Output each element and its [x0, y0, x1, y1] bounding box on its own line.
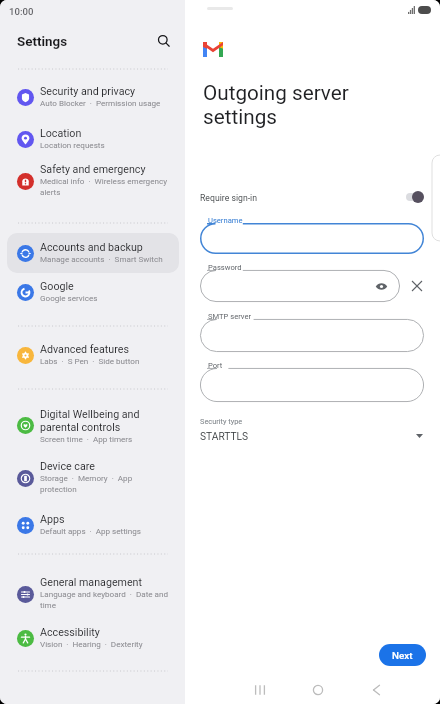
button[interactable]: [7, 506, 179, 546]
button[interactable]: [7, 120, 179, 160]
button[interactable]: Security type: [200, 414, 424, 448]
staticText: Accessibility: [40, 626, 100, 639]
button[interactable]: Next: [379, 644, 426, 666]
staticText: Google services: [40, 293, 98, 302]
staticText: Auto Blocker · Permission usage: [40, 98, 161, 107]
staticText: Apps: [40, 513, 65, 526]
button[interactable]: SMTP server: [200, 319, 424, 352]
staticText: Manage accounts · Smart Switch: [40, 254, 163, 263]
button[interactable]: [7, 78, 179, 118]
button[interactable]: [7, 272, 179, 312]
staticText: Vision · Hearing · Dexterity: [40, 639, 143, 648]
button[interactable]: [7, 233, 179, 273]
staticText: Security type: [200, 417, 243, 426]
staticText: Require sign-in: [200, 193, 258, 203]
staticText: Port: [208, 361, 223, 370]
staticText: Location requests: [40, 140, 105, 149]
button[interactable]: [7, 458, 179, 498]
button[interactable]: Back: [361, 676, 389, 704]
staticText: Advanced features: [40, 343, 129, 356]
button[interactable]: [7, 335, 179, 375]
staticText: Google: [40, 280, 74, 293]
staticText: Medical info · Wireless emergency alerts: [40, 176, 167, 197]
button[interactable]: Clear: [407, 276, 427, 296]
staticText: SMTP server: [208, 312, 252, 321]
staticText: Location: [40, 127, 82, 140]
button[interactable]: Password: [200, 270, 400, 302]
staticText: General management: [40, 576, 143, 589]
staticText: Labs · S Pen · Side button: [40, 356, 140, 365]
staticText: Accounts and backup: [40, 241, 143, 254]
button[interactable]: [7, 574, 179, 614]
staticText: Outgoing server settings: [203, 81, 403, 129]
staticText: Next: [392, 650, 413, 661]
button[interactable]: Search: [151, 28, 175, 52]
button[interactable]: Require sign-in: [195, 186, 429, 209]
staticText: Default apps · App settings: [40, 526, 142, 535]
button[interactable]: Username: [200, 223, 424, 254]
staticText: Device care: [40, 460, 95, 473]
button[interactable]: Recents: [246, 676, 274, 704]
staticText: Screen time · App timers: [40, 434, 133, 443]
staticText: Storage · Memory · App protection: [40, 473, 133, 494]
staticText: Password: [208, 263, 242, 272]
staticText: Settings: [17, 34, 68, 50]
staticText: Language and keyboard · Date and time: [40, 589, 169, 610]
button[interactable]: [7, 161, 179, 201]
staticText: Digital Wellbeing and parental controls: [40, 408, 140, 434]
staticText: STARTTLS: [200, 431, 249, 443]
button[interactable]: [7, 406, 179, 446]
button[interactable]: Home: [304, 676, 332, 704]
button[interactable]: Port: [200, 368, 424, 402]
staticText: Username: [208, 216, 243, 225]
button[interactable]: [7, 618, 179, 658]
staticText: Safety and emergency: [40, 163, 146, 176]
staticText: 10:00: [9, 6, 34, 17]
staticText: Security and privacy: [40, 85, 136, 98]
